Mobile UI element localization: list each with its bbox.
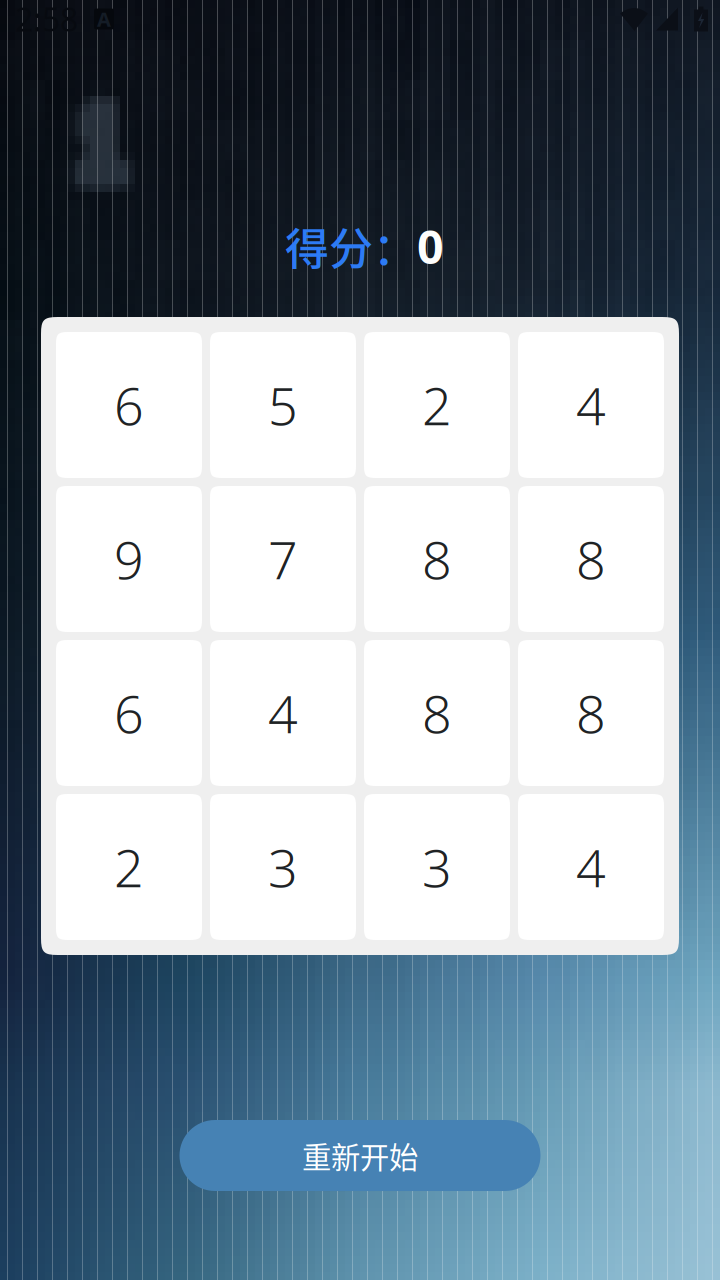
staticText: 2 xyxy=(114,832,144,902)
staticText: 3 xyxy=(422,832,452,902)
staticText: 4 xyxy=(576,370,606,440)
staticText: 8 xyxy=(422,524,452,594)
staticText: 7 xyxy=(268,524,298,594)
staticText: 6 xyxy=(114,370,144,440)
staticText: 8 xyxy=(422,678,452,748)
staticText: 3 xyxy=(268,832,298,902)
staticText: A xyxy=(97,5,111,33)
staticText: 重新开始 xyxy=(302,1134,418,1177)
staticText: 9 xyxy=(114,524,144,594)
button[interactable]: 重新开始 xyxy=(179,1120,540,1191)
staticText: 4 xyxy=(576,832,606,902)
staticText: 5 xyxy=(268,370,298,440)
staticText: 8 xyxy=(576,524,606,594)
staticText: 8 xyxy=(576,678,606,748)
staticText: 2 xyxy=(422,370,452,440)
staticText: 6 xyxy=(114,678,144,748)
staticText: 得分： xyxy=(285,214,417,278)
staticText: 0 xyxy=(417,214,444,278)
staticText: 4 xyxy=(268,678,298,748)
